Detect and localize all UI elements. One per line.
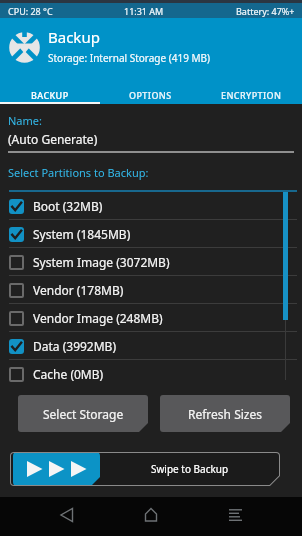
button[interactable]: Boot (32MB) (0, 192, 302, 220)
button[interactable]: System (1845MB) (0, 220, 302, 248)
button[interactable] (201, 497, 302, 536)
staticText: Backup (48, 27, 100, 47)
button[interactable]: ENCRYPTION (201, 85, 302, 104)
staticText: Boot (32MB) (33, 198, 103, 214)
button[interactable]: Select Storage (18, 395, 148, 432)
button[interactable]: Swipe to Backup (10, 452, 280, 486)
staticText: CPU: 28 °C (8, 5, 53, 17)
button[interactable]: Vendor Image (248MB) (0, 304, 302, 332)
staticText: OPTIONS (129, 89, 172, 101)
staticText: System Image (3072MB) (33, 254, 170, 270)
staticText: Cache (0MB) (33, 366, 104, 382)
staticText: Vendor (178MB) (33, 282, 124, 298)
staticText: Select Partitions to Backup: (8, 165, 149, 180)
button[interactable]: Cache (0MB) (0, 360, 302, 388)
staticText: (Auto Generate) (8, 131, 98, 147)
staticText: Battery: 47%+ (236, 5, 295, 17)
staticText: BACKUP (31, 89, 69, 101)
staticText: Select Storage (43, 406, 124, 422)
staticText: Storage: Internal Storage (419 MB) (48, 51, 211, 65)
button[interactable]: Vendor (178MB) (0, 276, 302, 304)
staticText: Name: (8, 113, 42, 128)
staticText: 11:31 AM (124, 5, 164, 17)
staticText: Vendor Image (248MB) (33, 310, 163, 326)
button[interactable] (0, 497, 100, 536)
button[interactable] (100, 497, 201, 536)
staticText: System (1845MB) (33, 226, 131, 242)
button[interactable]: OPTIONS (100, 85, 201, 104)
staticText: Refresh Sizes (188, 406, 262, 422)
staticText: Data (3992MB) (33, 338, 117, 354)
button[interactable]: BACKUP (0, 85, 100, 104)
staticText: ENCRYPTION (221, 89, 282, 101)
button[interactable]: Data (3992MB) (0, 332, 302, 360)
button[interactable]: Refresh Sizes (160, 395, 290, 432)
staticText: Swipe to Backup (151, 462, 229, 476)
button[interactable]: System Image (3072MB) (0, 248, 302, 276)
